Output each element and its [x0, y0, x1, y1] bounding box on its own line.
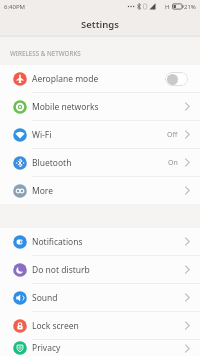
staticText: Settings: [81, 18, 119, 31]
staticText: Notifications: [32, 236, 83, 248]
button[interactable]: Bluetooth: [0, 149, 200, 176]
staticText: 21%: [184, 3, 196, 11]
staticText: Bluetooth: [32, 157, 72, 169]
staticText: Do not disturb: [32, 264, 90, 276]
button[interactable]: Lock screen: [0, 312, 200, 339]
staticText: Privacy: [32, 342, 61, 354]
staticText: Aeroplane mode: [32, 73, 99, 85]
button[interactable]: Do not disturb: [0, 256, 200, 283]
staticText: 6:40PM: [4, 3, 25, 11]
button[interactable]: More: [0, 177, 200, 204]
button[interactable]: Notifications: [0, 228, 200, 255]
staticText: Mobile networks: [32, 101, 99, 113]
staticText: WIRELESS & NETWORKS: [10, 49, 81, 58]
staticText: On: [168, 158, 178, 168]
button[interactable]: Sound: [0, 284, 200, 311]
button[interactable]: [165, 72, 188, 86]
staticText: H: [165, 3, 170, 11]
staticText: Lock screen: [32, 320, 79, 332]
staticText: Wi-Fi: [32, 129, 52, 141]
button[interactable]: Wi-Fi: [0, 121, 200, 148]
button[interactable]: Privacy: [0, 340, 200, 356]
staticText: Off: [167, 130, 178, 140]
button[interactable]: Mobile networks: [0, 93, 200, 120]
button[interactable]: Aeroplane mode: [0, 65, 200, 92]
staticText: Sound: [32, 292, 58, 304]
staticText: More: [32, 185, 53, 197]
